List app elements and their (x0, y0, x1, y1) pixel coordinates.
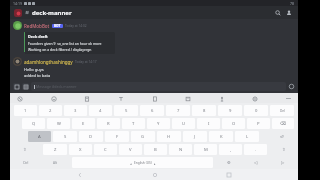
button[interactable]: 6 (140, 105, 164, 116)
button[interactable]: V (119, 144, 142, 155)
staticText: S (64, 134, 67, 140)
staticText: I (208, 121, 210, 127)
staticText: G (141, 134, 145, 140)
button[interactable]: Members (284, 8, 294, 18)
staticText: Founders given 9 so_one list an hour ok … (28, 41, 102, 46)
button[interactable]: 9 (218, 105, 242, 116)
button[interactable]: ⚙ (217, 157, 240, 168)
staticText: A (38, 134, 41, 140)
staticText: ⇧ (23, 147, 27, 152)
staticText: 14:19 (13, 1, 22, 6)
button[interactable]: P (247, 118, 270, 129)
button[interactable]: A (28, 131, 51, 142)
button[interactable]: Ctrl (14, 157, 38, 168)
button[interactable]: 1 (14, 105, 37, 116)
button[interactable]: X (69, 144, 92, 155)
button[interactable]: D (79, 131, 103, 142)
staticText: X (79, 147, 82, 153)
button[interactable]: 4 (89, 105, 112, 116)
button[interactable]: Theme (150, 94, 159, 103)
button[interactable]: 3 (64, 105, 87, 116)
staticText: adamhlongthashinggy (24, 59, 73, 65)
staticText: ▷ (281, 160, 285, 165)
staticText: T (132, 121, 135, 127)
button[interactable]: Home (150, 170, 159, 179)
button[interactable]: ▷ (271, 157, 294, 168)
button[interactable]: J (183, 131, 207, 142)
staticText: F (116, 134, 119, 140)
staticText: 0 (255, 108, 258, 114)
button[interactable]: Translate (116, 94, 125, 103)
button[interactable]: Attach (13, 83, 20, 90)
staticText: . (255, 147, 257, 153)
button[interactable]: C (94, 144, 117, 155)
staticText: D (89, 134, 93, 140)
button[interactable]: Message #deck-manner (31, 82, 286, 91)
button[interactable]: Mic (217, 94, 226, 103)
button[interactable]: Back (75, 170, 84, 179)
button[interactable]: H (157, 131, 181, 142)
button[interactable]: 0 (244, 105, 268, 116)
staticText: B (154, 147, 157, 153)
button[interactable]: L (235, 131, 259, 142)
button[interactable]: Apps (22, 83, 29, 90)
button[interactable]: Clipboard (82, 94, 91, 103)
button[interactable]: 2 (39, 105, 62, 116)
button[interactable]: Search (273, 8, 283, 18)
button[interactable]: Voice (15, 94, 24, 103)
button[interactable]: ⌫ (272, 118, 294, 129)
button[interactable]: 8 (192, 105, 216, 116)
staticText: K (220, 134, 223, 140)
staticText: C (104, 147, 107, 153)
staticText: BOT (54, 24, 61, 28)
button[interactable]: ⏎ (270, 131, 294, 142)
button[interactable]: Del (270, 105, 294, 116)
staticText: Del (280, 109, 285, 113)
staticText: 9 (229, 108, 232, 114)
button[interactable]: U (172, 118, 195, 129)
button[interactable]: K (209, 131, 233, 142)
staticText: R (107, 121, 110, 127)
staticText: W (57, 121, 61, 127)
button[interactable]: N (169, 144, 192, 155)
button[interactable]: Z (43, 144, 67, 155)
button[interactable]: Q (22, 118, 45, 129)
staticText: 5 (125, 108, 128, 114)
staticText: N (179, 147, 183, 153)
button[interactable]: R (97, 118, 120, 129)
button[interactable]: ⇧ (14, 144, 36, 155)
button[interactable]: E (72, 118, 95, 129)
staticText: Deck draft (28, 34, 48, 39)
staticText: 8 (203, 108, 206, 114)
button[interactable]: G (131, 131, 155, 142)
button[interactable]: Recents (224, 170, 233, 179)
button[interactable]: Y (147, 118, 170, 129)
button[interactable]: Settings (250, 94, 259, 103)
button[interactable]: I (197, 118, 220, 129)
button[interactable]: ◁ (244, 157, 267, 168)
button[interactable]: T (122, 118, 145, 129)
button[interactable]: W (47, 118, 70, 129)
button[interactable]: 7 (166, 105, 190, 116)
button[interactable]: Server (14, 9, 22, 17)
button[interactable]: Sticker (183, 94, 192, 103)
staticText: Ctrl (23, 161, 29, 165)
button[interactable]: F (105, 131, 129, 142)
button[interactable]: Alt (43, 157, 67, 168)
button[interactable]: 5 (114, 105, 138, 116)
button[interactable]: More (284, 94, 293, 103)
staticText: E (82, 121, 85, 127)
staticText: ⌫ (280, 121, 286, 126)
staticText: ◁ (254, 160, 258, 165)
button[interactable]: ⇧ (273, 144, 294, 155)
button[interactable]: Emoji (49, 94, 58, 103)
staticText: J (194, 134, 196, 140)
button[interactable]: ◂ (72, 157, 213, 168)
button[interactable]: O (222, 118, 245, 129)
button[interactable]: B (144, 144, 167, 155)
button[interactable]: M (194, 144, 217, 155)
button[interactable]: S (53, 131, 77, 142)
button[interactable]: Emoji (288, 83, 295, 90)
